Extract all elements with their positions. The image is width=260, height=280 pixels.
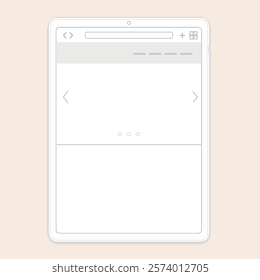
button[interactable]: Address bar <box>85 31 172 40</box>
button[interactable]: Previous slide <box>59 88 71 106</box>
button[interactable]: Forward <box>69 31 78 41</box>
button[interactable]: Tab overview <box>188 31 199 41</box>
button[interactable]: New tab <box>178 31 188 41</box>
button[interactable]: Go to slide 3 <box>134 130 142 138</box>
button[interactable]: Menu item 3 <box>163 48 178 59</box>
button[interactable]: Back <box>61 31 70 41</box>
button[interactable]: Go to slide 1 <box>116 130 124 138</box>
button[interactable]: Next slide <box>189 88 201 106</box>
staticText: shutterstock.com · 2574012705 <box>52 261 209 276</box>
button[interactable]: Menu item 1 <box>132 48 147 59</box>
button[interactable]: Menu item 4 <box>179 48 194 59</box>
button[interactable]: Go to slide 2 <box>125 130 133 138</box>
button[interactable]: Menu item 2 <box>148 48 163 59</box>
